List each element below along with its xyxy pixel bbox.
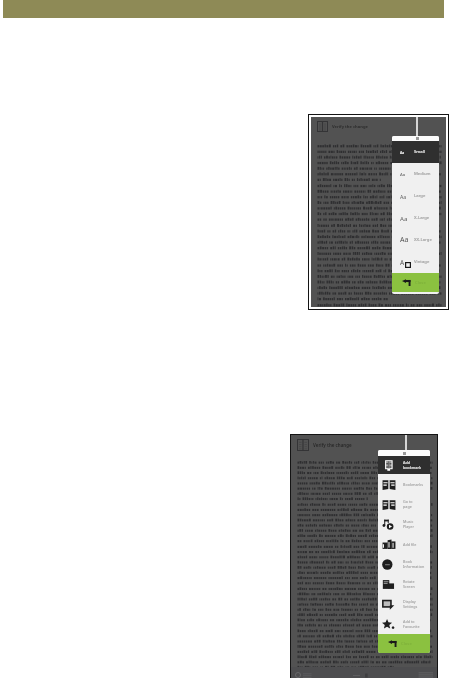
staticText: Verify the change (332, 124, 368, 130)
button[interactable]: Music Player (378, 514, 430, 534)
staticText: Go to page (403, 499, 413, 509)
staticText: Add to Favourite (403, 619, 420, 629)
staticText: Rotate Screen (403, 579, 415, 589)
button[interactable]: Aa (392, 163, 439, 185)
button[interactable]: Book Information (378, 554, 430, 574)
staticText: Large (414, 193, 426, 199)
staticText: Display Settings (403, 599, 418, 609)
staticText: Music Player (403, 519, 414, 529)
staticText: Aa (400, 150, 405, 155)
button[interactable]: Aa (392, 229, 439, 251)
staticText: A (400, 258, 405, 267)
button[interactable]: Rotate Screen (378, 574, 430, 594)
staticText: Add bookmark (403, 460, 422, 470)
staticText: Aa (400, 171, 406, 177)
button[interactable]: Close (378, 634, 430, 653)
staticText: Aa (400, 214, 408, 222)
staticText: Aa (400, 193, 407, 200)
staticText: Aa (400, 235, 409, 245)
staticText: Medium (414, 171, 431, 177)
button[interactable]: Close (392, 273, 439, 292)
button[interactable]: Aa (392, 185, 439, 207)
button[interactable]: A (392, 251, 439, 273)
staticText: Bookmarks (403, 482, 423, 487)
button[interactable]: Display Settings (378, 594, 430, 614)
staticText: Close (401, 641, 412, 647)
button[interactable]: Aa (392, 141, 439, 163)
staticText: Vintage (414, 259, 430, 265)
staticText: Book Information (403, 559, 425, 569)
button[interactable]: Add to Favourite (378, 614, 430, 634)
button[interactable]: Add file (378, 534, 430, 554)
staticText: XX-Large (414, 237, 432, 243)
button[interactable]: Go to page (378, 494, 430, 514)
button[interactable]: Bookmarks (378, 474, 430, 494)
button[interactable]: Add bookmark (378, 456, 430, 474)
staticText: Add file (403, 542, 417, 547)
staticText: Close (415, 280, 426, 286)
button[interactable]: Aa (392, 207, 439, 229)
staticText: X-Large (414, 215, 430, 221)
staticText: Small (414, 149, 425, 155)
staticText: Verify the change (313, 442, 352, 448)
